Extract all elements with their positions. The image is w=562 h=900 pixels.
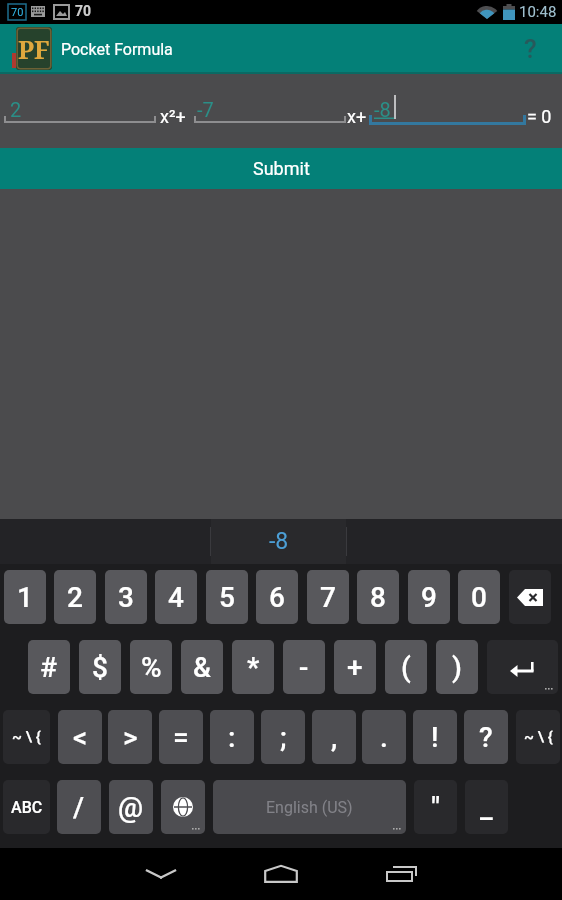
button[interactable] — [131, 848, 191, 900]
staticText: - — [299, 651, 309, 684]
staticText: & — [193, 651, 211, 684]
button[interactable]: / — [57, 780, 101, 834]
staticText: ; — [280, 721, 287, 754]
button[interactable]: 2 — [54, 570, 96, 624]
button[interactable]: 9 — [408, 570, 450, 624]
staticText: Submit — [253, 158, 310, 179]
staticText: 5 — [219, 581, 235, 614]
button[interactable]: 0 — [458, 570, 500, 624]
button[interactable]: ~ \ { — [516, 710, 560, 764]
staticText: 3 — [118, 581, 134, 614]
staticText: ABC — [11, 798, 43, 817]
staticText: -8 — [374, 98, 391, 121]
staticText: ) — [452, 651, 462, 684]
staticText: 10:48 — [519, 3, 557, 21]
button[interactable]: 6 — [256, 570, 298, 624]
staticText: > — [123, 721, 138, 754]
staticText: @ — [118, 791, 144, 824]
button[interactable]: $ — [79, 640, 121, 694]
button[interactable] — [487, 640, 558, 694]
button[interactable]: ABC — [3, 780, 50, 834]
staticText: , — [331, 721, 338, 754]
button[interactable]: English (US) — [213, 780, 406, 834]
staticText: PF — [18, 32, 50, 66]
button[interactable]: = — [159, 710, 203, 764]
staticText: _ — [480, 791, 493, 824]
staticText: English (US) — [266, 798, 353, 817]
button[interactable]: , — [312, 710, 356, 764]
button[interactable]: : — [210, 710, 254, 764]
staticText: + — [347, 651, 363, 684]
staticText: 7 — [320, 581, 336, 614]
button[interactable]: # — [28, 640, 70, 694]
button[interactable]: _ — [465, 780, 508, 834]
staticText: 70 — [75, 3, 92, 19]
staticText: " — [431, 791, 441, 824]
button[interactable]: 4 — [155, 570, 197, 624]
staticText: 9 — [421, 581, 437, 614]
button[interactable] — [251, 848, 311, 900]
staticText: ! — [431, 721, 439, 754]
button[interactable]: -8 — [211, 519, 346, 564]
button[interactable]: ? — [498, 24, 562, 74]
staticText: < — [73, 721, 88, 754]
staticText: 70 — [11, 6, 24, 19]
button[interactable]: ( — [385, 640, 427, 694]
button[interactable]: > — [108, 710, 152, 764]
button[interactable]: ? — [464, 710, 508, 764]
button[interactable]: ~ \ { — [3, 710, 50, 764]
button[interactable]: 1 — [4, 570, 46, 624]
button[interactable]: 7 — [307, 570, 349, 624]
staticText: % — [141, 651, 162, 684]
button[interactable]: * — [232, 640, 274, 694]
staticText: = 0 — [527, 106, 552, 127]
staticText: 8 — [370, 581, 386, 614]
button[interactable]: 8 — [357, 570, 399, 624]
button[interactable]: ! — [413, 710, 457, 764]
button[interactable]: & — [181, 640, 223, 694]
button[interactable]: ) — [436, 640, 478, 694]
staticText: ( — [401, 651, 411, 684]
staticText: ? — [479, 721, 493, 754]
staticText: 6 — [269, 581, 285, 614]
staticText: -7 — [197, 98, 214, 121]
button[interactable]: 3 — [105, 570, 147, 624]
button[interactable] — [371, 848, 431, 900]
staticText: 4 — [168, 581, 184, 614]
staticText: 2 — [67, 581, 83, 614]
button[interactable]: % — [130, 640, 172, 694]
button[interactable]: 5 — [206, 570, 248, 624]
staticText: $ — [92, 651, 108, 684]
staticText: ~ \ { — [12, 728, 41, 746]
staticText: 1 — [17, 581, 33, 614]
staticText: 0 — [471, 581, 487, 614]
button[interactable] — [161, 780, 205, 834]
button[interactable]: @ — [109, 780, 153, 834]
button[interactable]: + — [334, 640, 376, 694]
staticText: * — [247, 651, 260, 684]
staticText: # — [40, 651, 58, 684]
button[interactable]: Submit — [0, 148, 562, 189]
button[interactable]: ; — [261, 710, 305, 764]
staticText: : — [228, 721, 236, 754]
staticText: 2 — [10, 98, 22, 121]
staticText: / — [73, 791, 85, 824]
staticText: x²+ — [160, 106, 186, 127]
button[interactable]: - — [283, 640, 325, 694]
staticText: ~ \ { — [524, 728, 553, 746]
staticText: . — [380, 721, 388, 754]
staticText: x+ — [347, 106, 367, 127]
staticText: -8 — [269, 528, 289, 555]
staticText: = — [173, 721, 189, 754]
button[interactable]: < — [58, 710, 102, 764]
staticText: ? — [524, 34, 537, 64]
button[interactable] — [509, 570, 551, 624]
staticText: Pocket Formula — [61, 40, 173, 59]
button[interactable]: . — [362, 710, 406, 764]
button[interactable]: " — [414, 780, 457, 834]
